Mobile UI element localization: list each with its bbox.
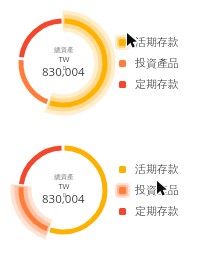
staticText: 830,004	[42, 191, 85, 207]
button[interactable]: 定期存款	[114, 76, 199, 92]
button[interactable]: 定期存款	[114, 203, 199, 219]
staticText: 投資產品	[135, 183, 179, 197]
staticText: 活期存款	[135, 35, 179, 49]
button[interactable]: 投資產品	[114, 55, 199, 71]
staticText: D	[63, 65, 67, 71]
staticText: 定期存款	[135, 77, 179, 91]
button[interactable]: 活期存款	[114, 161, 199, 177]
staticText: 活期存款	[135, 162, 179, 176]
staticText: 投資產品	[135, 56, 179, 70]
staticText: 總資產	[54, 46, 74, 54]
staticText: TW	[58, 181, 70, 191]
staticText: 定期存款	[135, 204, 179, 218]
staticText: TW	[58, 54, 70, 64]
staticText: D	[63, 192, 67, 198]
button[interactable]: Total assets donut chart	[12, 12, 114, 114]
button[interactable]: Total assets donut chart	[12, 139, 114, 241]
staticText: 830,004	[42, 64, 85, 80]
button[interactable]: 投資產品	[114, 182, 199, 198]
staticText: 總資產	[54, 173, 74, 181]
button[interactable]: 活期存款	[114, 34, 199, 50]
